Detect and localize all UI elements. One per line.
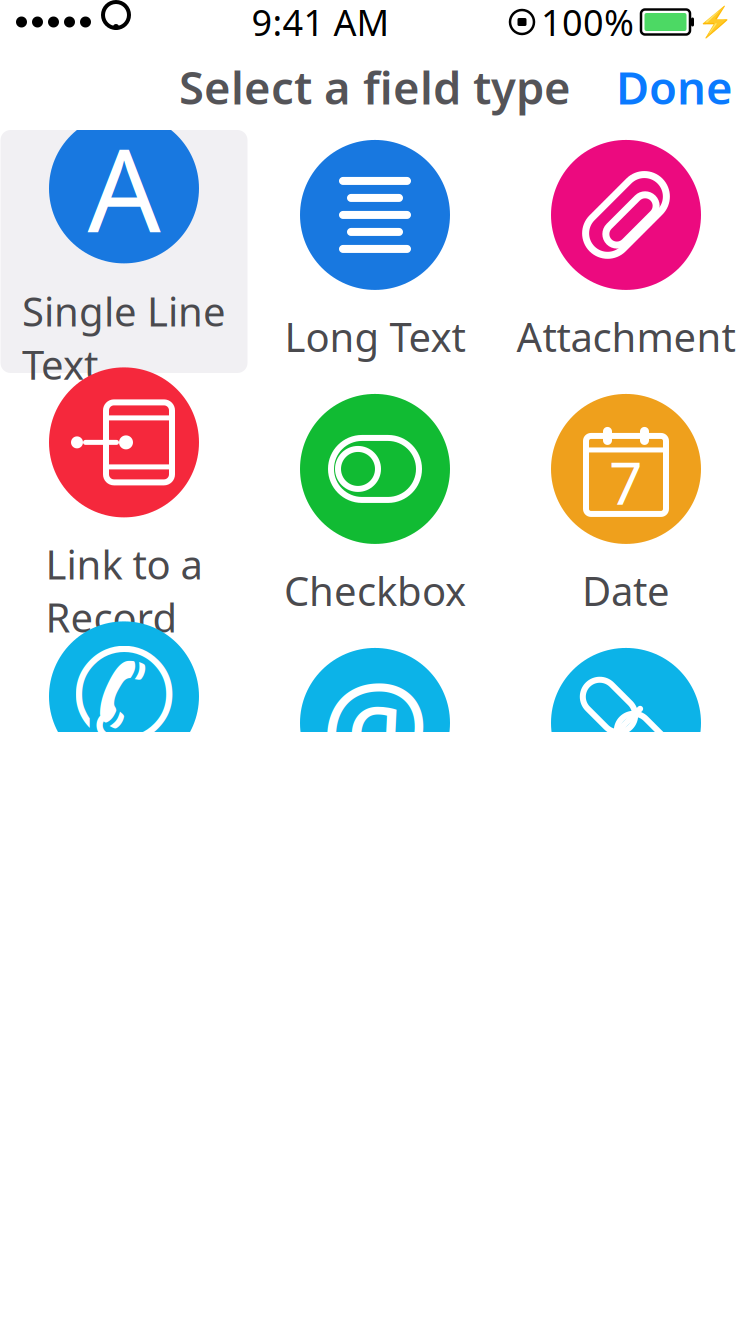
button[interactable]: Long Text	[251, 130, 498, 373]
staticText: Select a field type	[179, 57, 571, 117]
button[interactable]: Link to a Record	[0, 384, 247, 627]
staticText: Attachment	[516, 310, 735, 363]
staticText: 7	[609, 443, 643, 521]
button[interactable]: A	[0, 130, 247, 373]
button[interactable]: Attachment	[502, 130, 749, 373]
button[interactable]: ✆	[0, 638, 247, 881]
staticText: Link to a Record	[45, 537, 202, 644]
staticText: Long Text	[284, 310, 465, 363]
staticText: Single Line Text	[22, 284, 226, 391]
staticText: @	[320, 641, 430, 804]
staticText: Done	[616, 57, 733, 117]
staticText: Checkbox	[284, 564, 466, 617]
staticText: A	[87, 112, 160, 264]
staticText: ✆	[70, 624, 177, 769]
button[interactable]: Done	[599, 47, 750, 127]
button[interactable]: URL	[502, 638, 749, 881]
button[interactable]: @	[251, 638, 498, 881]
staticText: 100%	[541, 0, 634, 46]
staticText: Date	[582, 564, 670, 617]
button[interactable]: 7	[502, 384, 749, 627]
staticText: ⚡	[697, 5, 734, 39]
staticText: 9:41 AM	[251, 0, 389, 46]
button[interactable]: Checkbox	[251, 384, 498, 627]
